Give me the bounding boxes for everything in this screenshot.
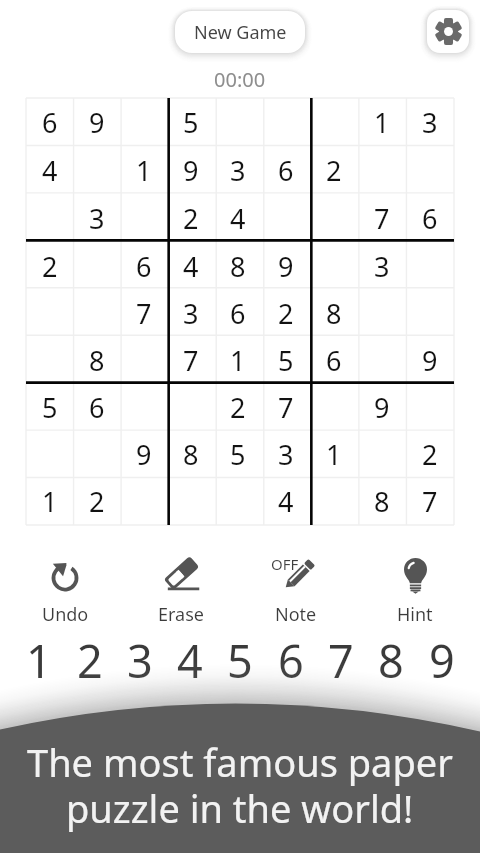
button[interactable]: 1 bbox=[214, 337, 262, 384]
button[interactable]: 1 bbox=[26, 478, 73, 525]
button[interactable]: 2 bbox=[406, 431, 454, 478]
button[interactable]: 9 bbox=[262, 242, 310, 290]
button[interactable]: 9 bbox=[120, 431, 167, 478]
staticText: 8 bbox=[378, 630, 404, 686]
button[interactable]: 4 bbox=[262, 478, 310, 525]
button[interactable]: 3 bbox=[167, 290, 214, 337]
button[interactable]: 9 bbox=[73, 98, 120, 146]
button[interactable]: Erase bbox=[137, 551, 225, 623]
button[interactable]: 8 bbox=[310, 290, 358, 337]
button[interactable]: 1 bbox=[358, 98, 406, 146]
button[interactable]: 7 bbox=[120, 290, 167, 337]
button[interactable]: 6 bbox=[120, 242, 167, 290]
button[interactable]: 5 bbox=[216, 630, 264, 686]
button[interactable]: 3 bbox=[406, 98, 454, 146]
button[interactable] bbox=[73, 242, 120, 290]
button[interactable] bbox=[358, 337, 406, 384]
button[interactable] bbox=[310, 98, 358, 146]
button[interactable]: 2 bbox=[214, 384, 262, 431]
button[interactable]: 7 bbox=[358, 194, 406, 242]
button[interactable]: 8 bbox=[73, 337, 120, 384]
button[interactable]: 7 bbox=[406, 478, 454, 525]
staticText: 7 bbox=[136, 295, 152, 332]
button[interactable] bbox=[310, 478, 358, 525]
button[interactable]: 8 bbox=[358, 478, 406, 525]
button[interactable] bbox=[167, 478, 214, 525]
button[interactable] bbox=[26, 337, 73, 384]
button[interactable]: 9 bbox=[406, 337, 454, 384]
button[interactable]: 4 bbox=[166, 630, 214, 686]
button[interactable] bbox=[406, 384, 454, 431]
button[interactable]: 3 bbox=[116, 630, 164, 686]
button[interactable]: 2 bbox=[310, 146, 358, 194]
button[interactable]: 6 bbox=[262, 146, 310, 194]
button[interactable]: 7 bbox=[167, 337, 214, 384]
button[interactable] bbox=[358, 290, 406, 337]
button[interactable] bbox=[358, 146, 406, 194]
staticText: 9 bbox=[89, 104, 105, 141]
button[interactable] bbox=[120, 337, 167, 384]
button[interactable]: 5 bbox=[167, 98, 214, 146]
button[interactable]: 2 bbox=[66, 630, 114, 686]
staticText: 9 bbox=[422, 342, 438, 379]
button[interactable] bbox=[310, 242, 358, 290]
button[interactable] bbox=[73, 431, 120, 478]
button[interactable]: 6 bbox=[214, 290, 262, 337]
button[interactable] bbox=[406, 242, 454, 290]
button[interactable]: 9 bbox=[358, 384, 406, 431]
button[interactable]: 6 bbox=[267, 630, 315, 686]
button[interactable] bbox=[120, 98, 167, 146]
button[interactable]: 5 bbox=[214, 431, 262, 478]
button[interactable]: 6 bbox=[310, 337, 358, 384]
button[interactable] bbox=[167, 384, 214, 431]
button[interactable] bbox=[73, 146, 120, 194]
button[interactable]: 8 bbox=[214, 242, 262, 290]
button[interactable]: New Game bbox=[175, 11, 305, 53]
button[interactable]: 1 bbox=[310, 431, 358, 478]
button[interactable]: Hint bbox=[371, 551, 459, 623]
button[interactable]: OFF bbox=[252, 551, 340, 623]
button[interactable]: 1 bbox=[120, 146, 167, 194]
button[interactable]: 9 bbox=[418, 630, 466, 686]
button[interactable]: 4 bbox=[167, 242, 214, 290]
button[interactable]: Settings bbox=[427, 10, 469, 53]
button[interactable] bbox=[26, 194, 73, 242]
button[interactable]: 5 bbox=[26, 384, 73, 431]
button[interactable] bbox=[406, 290, 454, 337]
button[interactable]: 7 bbox=[262, 384, 310, 431]
button[interactable]: 9 bbox=[167, 146, 214, 194]
button[interactable]: 8 bbox=[167, 431, 214, 478]
button[interactable] bbox=[358, 431, 406, 478]
button[interactable]: 4 bbox=[26, 146, 73, 194]
button[interactable]: 3 bbox=[262, 431, 310, 478]
button[interactable] bbox=[262, 194, 310, 242]
button[interactable] bbox=[310, 384, 358, 431]
button[interactable]: Undo bbox=[21, 551, 109, 623]
button[interactable] bbox=[73, 290, 120, 337]
button[interactable] bbox=[262, 98, 310, 146]
button[interactable]: 7 bbox=[317, 630, 365, 686]
button[interactable]: 6 bbox=[26, 98, 73, 146]
button[interactable]: 8 bbox=[367, 630, 415, 686]
button[interactable]: 6 bbox=[73, 384, 120, 431]
button[interactable]: 5 bbox=[262, 337, 310, 384]
button[interactable]: 4 bbox=[214, 194, 262, 242]
button[interactable] bbox=[214, 98, 262, 146]
button[interactable]: 3 bbox=[73, 194, 120, 242]
button[interactable]: 2 bbox=[262, 290, 310, 337]
button[interactable]: 6 bbox=[406, 194, 454, 242]
button[interactable]: 2 bbox=[73, 478, 120, 525]
button[interactable]: 2 bbox=[26, 242, 73, 290]
button[interactable]: 2 bbox=[167, 194, 214, 242]
button[interactable] bbox=[120, 384, 167, 431]
button[interactable] bbox=[406, 146, 454, 194]
button[interactable]: 3 bbox=[358, 242, 406, 290]
button[interactable] bbox=[120, 194, 167, 242]
button[interactable]: 1 bbox=[15, 630, 63, 686]
button[interactable]: 3 bbox=[214, 146, 262, 194]
button[interactable] bbox=[310, 194, 358, 242]
